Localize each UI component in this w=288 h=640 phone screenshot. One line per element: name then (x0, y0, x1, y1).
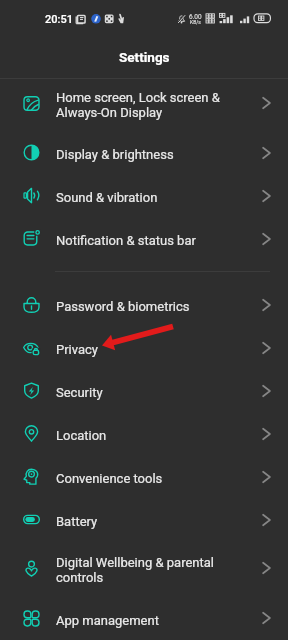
button[interactable]: Password & biometrics (0, 283, 288, 326)
staticText: Battery (56, 514, 262, 529)
button[interactable]: Location (0, 412, 288, 455)
button[interactable]: Digital Wellbeing & parental controls (0, 541, 288, 595)
staticText: Digital Wellbeing & parental controls (56, 555, 262, 585)
staticText: Display & brightness (56, 147, 262, 162)
button[interactable]: Battery (0, 498, 288, 541)
staticText: Password & biometrics (56, 299, 262, 314)
staticText: Convenience tools (56, 471, 262, 486)
staticText: App management (56, 613, 262, 628)
button[interactable]: App management (0, 595, 288, 640)
staticText: Security (56, 385, 262, 400)
button[interactable]: Notification & status bar (0, 217, 288, 260)
staticText: 6.00 (189, 13, 202, 21)
staticText: Notification & status bar (56, 233, 262, 248)
staticText: Location (56, 428, 262, 443)
button[interactable]: Home screen, Lock screen & Always-On Dis… (0, 75, 288, 131)
staticText: Settings (119, 49, 170, 65)
staticText: KB/s (190, 19, 201, 25)
button[interactable]: Security (0, 369, 288, 412)
staticText: 20:51 (45, 13, 73, 26)
button[interactable]: Convenience tools (0, 455, 288, 498)
staticText: Home screen, Lock screen & Always-On Dis… (56, 90, 262, 120)
staticText: Sound & vibration (56, 190, 262, 205)
button[interactable]: Privacy (0, 326, 288, 369)
button[interactable]: Sound & vibration (0, 174, 288, 217)
button[interactable]: Display & brightness (0, 131, 288, 174)
staticText: Privacy (56, 342, 262, 357)
